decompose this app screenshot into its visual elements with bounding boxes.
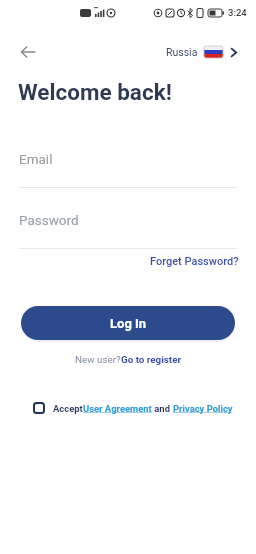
- staticText: and: [152, 403, 173, 414]
- staticText: Log In: [110, 316, 147, 331]
- staticText: User Agreement: [83, 403, 152, 414]
- staticText: New user?: [75, 354, 121, 365]
- button[interactable]: [21, 45, 36, 59]
- button[interactable]: New user?: [75, 354, 182, 365]
- button[interactable]: Log In: [21, 306, 235, 340]
- button[interactable]: Privacy Policy: [173, 403, 233, 414]
- staticText: Forget Password?: [150, 255, 239, 268]
- staticText: Russia: [166, 46, 198, 58]
- staticText: Go to register: [121, 354, 182, 365]
- staticText: 3:24: [228, 7, 247, 18]
- staticText: Privacy Policy: [173, 403, 233, 414]
- staticText: Welcome back!: [18, 79, 172, 105]
- button[interactable]: User Agreement: [83, 403, 152, 414]
- button[interactable]: Forget Password?: [150, 255, 239, 268]
- staticText: Email: [19, 151, 53, 167]
- button[interactable]: Russia: [166, 44, 237, 60]
- button[interactable]: [33, 402, 45, 414]
- staticText: Accept: [53, 403, 83, 414]
- staticText: Password: [19, 212, 79, 228]
